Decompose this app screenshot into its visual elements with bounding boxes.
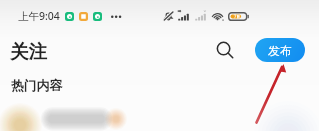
staticText: 上午9:04 <box>18 9 60 23</box>
staticText: 发布 <box>268 43 292 58</box>
button[interactable]: 发布 <box>255 38 305 62</box>
staticText: 热门内容 <box>11 78 63 94</box>
staticText: 关注 <box>10 40 47 63</box>
button[interactable]: 搜索 <box>212 37 238 63</box>
